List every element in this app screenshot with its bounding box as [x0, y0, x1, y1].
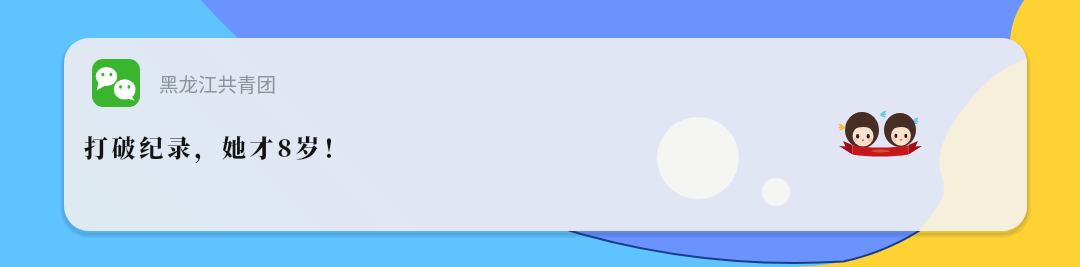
button[interactable]: WeChat official account logo	[92, 59, 140, 107]
button[interactable]: WeChat official account logo	[64, 38, 1027, 231]
staticText: 黑龙江共青团	[159, 69, 277, 97]
staticText: 打破纪录，她才8岁！	[84, 129, 351, 163]
